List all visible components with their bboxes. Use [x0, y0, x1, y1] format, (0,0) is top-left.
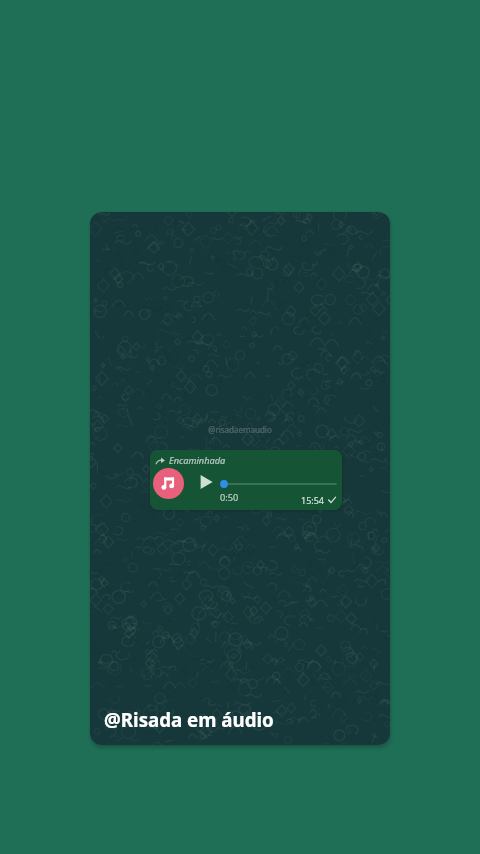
button[interactable]: Play	[198, 473, 216, 491]
button[interactable]: Encaminhada	[150, 450, 342, 510]
button[interactable]: Contact avatar	[153, 468, 184, 499]
staticText: 15:54	[301, 494, 325, 506]
staticText: @Risada em áudio	[104, 707, 274, 732]
staticText: @risadaemaudio	[208, 424, 272, 435]
staticText: 0:50	[220, 491, 239, 504]
staticText: Encaminhada	[169, 454, 226, 467]
